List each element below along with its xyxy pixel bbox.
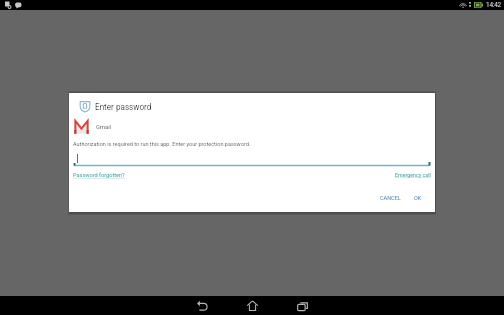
button[interactable]: Password field <box>73 150 431 167</box>
staticText: Authorization is required to run this ap… <box>73 141 251 147</box>
button[interactable]: Emergency call <box>395 172 431 178</box>
staticText: 14:42 <box>486 1 501 9</box>
button[interactable]: OK <box>410 192 426 204</box>
staticText: Gmail <box>96 124 112 131</box>
button[interactable]: Recent apps <box>277 296 327 315</box>
staticText: OK <box>414 195 422 201</box>
button[interactable]: Password forgotten? <box>73 172 125 179</box>
staticText: Password forgotten? <box>73 172 125 179</box>
staticText: Emergency call <box>395 172 431 178</box>
staticText: CANCEL <box>380 195 401 201</box>
button[interactable]: Home <box>227 296 277 315</box>
staticText: Enter password <box>95 102 152 112</box>
button[interactable]: Back <box>177 296 227 315</box>
button[interactable]: CANCEL <box>376 192 405 204</box>
